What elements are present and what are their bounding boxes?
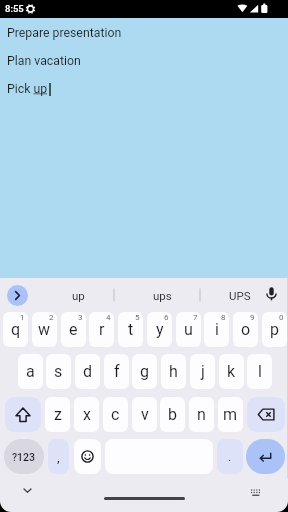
- staticText: u: [184, 320, 193, 339]
- button[interactable]: b: [160, 397, 185, 432]
- button[interactable]: g: [132, 354, 157, 389]
- button[interactable]: m: [218, 397, 243, 432]
- staticText: q: [11, 320, 21, 339]
- button[interactable]: [246, 439, 285, 474]
- button[interactable]: .: [217, 439, 243, 474]
- button[interactable]: y: [147, 312, 172, 347]
- staticText: c: [111, 405, 120, 424]
- staticText: 9: [250, 313, 255, 322]
- button[interactable]: ups: [120, 281, 204, 309]
- button[interactable]: [7, 285, 28, 306]
- staticText: p: [270, 320, 279, 339]
- button[interactable]: o: [233, 312, 258, 347]
- staticText: e: [69, 320, 78, 339]
- staticText: UPS: [229, 289, 251, 302]
- button[interactable]: ?123: [4, 439, 44, 474]
- button[interactable]: t: [118, 312, 143, 347]
- button[interactable]: c: [103, 397, 128, 432]
- staticText: l: [258, 362, 262, 381]
- button[interactable]: i: [204, 312, 229, 347]
- button[interactable]: [74, 439, 101, 474]
- staticText: 2: [49, 313, 54, 322]
- staticText: up: [72, 289, 85, 302]
- staticText: t: [128, 320, 134, 339]
- staticText: 3: [78, 313, 83, 322]
- button[interactable]: [5, 397, 41, 432]
- staticText: Plan vacation: [7, 54, 81, 68]
- staticText: 8: [221, 313, 226, 322]
- staticText: ?123: [12, 451, 36, 463]
- staticText: m: [223, 405, 238, 424]
- staticText: 8:55: [5, 3, 24, 14]
- staticText: 5: [135, 313, 140, 322]
- staticText: 0: [279, 313, 284, 322]
- button[interactable]: a: [18, 354, 43, 389]
- button[interactable]: j: [190, 354, 215, 389]
- button[interactable]: v: [132, 397, 157, 432]
- button[interactable]: [104, 497, 185, 500]
- staticText: i: [215, 320, 219, 339]
- staticText: r: [99, 320, 105, 339]
- staticText: w: [38, 320, 51, 339]
- staticText: j: [201, 362, 205, 381]
- button[interactable]: n: [189, 397, 214, 432]
- staticText: 6: [164, 313, 169, 322]
- staticText: Prepare presentation: [7, 26, 122, 40]
- staticText: ups: [153, 289, 172, 302]
- button[interactable]: q: [3, 312, 28, 347]
- staticText: y: [156, 320, 164, 339]
- staticText: Pick up: [7, 82, 48, 96]
- button[interactable]: [247, 397, 285, 432]
- button[interactable]: UPS: [201, 281, 279, 309]
- button[interactable]: x: [74, 397, 99, 432]
- staticText: b: [168, 405, 177, 424]
- staticText: s: [54, 362, 63, 381]
- button[interactable]: p: [262, 312, 287, 347]
- staticText: n: [197, 405, 206, 424]
- button[interactable]: ,: [48, 439, 69, 474]
- button[interactable]: [20, 484, 35, 497]
- button[interactable]: up: [41, 281, 115, 309]
- staticText: z: [54, 405, 62, 424]
- button[interactable]: l: [247, 354, 272, 389]
- button[interactable]: r: [89, 312, 114, 347]
- button[interactable]: h: [161, 354, 186, 389]
- staticText: o: [241, 320, 251, 339]
- button[interactable]: f: [104, 354, 129, 389]
- staticText: x: [83, 405, 91, 424]
- button[interactable]: s: [46, 354, 71, 389]
- button[interactable]: u: [176, 312, 201, 347]
- staticText: .: [228, 450, 232, 464]
- button[interactable]: w: [32, 312, 57, 347]
- button[interactable]: e: [61, 312, 86, 347]
- staticText: 7: [193, 313, 198, 322]
- staticText: h: [169, 362, 178, 381]
- staticText: a: [26, 362, 35, 381]
- button[interactable]: [249, 487, 263, 499]
- staticText: 4: [106, 313, 111, 322]
- button[interactable]: k: [219, 354, 244, 389]
- staticText: ,: [57, 449, 60, 465]
- staticText: v: [141, 405, 149, 424]
- button[interactable]: d: [75, 354, 100, 389]
- staticText: f: [114, 362, 120, 381]
- staticText: 1: [20, 313, 25, 322]
- button[interactable]: z: [45, 397, 70, 432]
- staticText: k: [227, 362, 236, 381]
- staticText: d: [83, 362, 93, 381]
- staticText: g: [140, 362, 149, 381]
